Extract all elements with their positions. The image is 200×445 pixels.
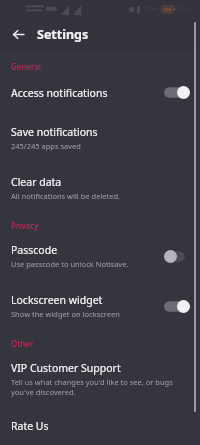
staticText: All notifications will be deleted.	[11, 191, 121, 201]
staticText: 245/245 apps saved	[11, 141, 81, 151]
staticText: Passcode	[11, 243, 58, 257]
button[interactable]: Rate Us	[0, 410, 200, 445]
staticText: Use passcode to unlock Notisave.	[11, 259, 129, 269]
staticText: Other	[11, 338, 34, 349]
staticText: 01:19	[178, 5, 194, 13]
button[interactable]: Back	[7, 23, 30, 46]
staticText: Access notifications	[11, 86, 108, 100]
button[interactable]: Lockscreen widget	[0, 284, 200, 328]
staticText: General	[11, 61, 41, 72]
button[interactable]: Passcode	[162, 248, 192, 265]
button[interactable]: VIP Customer Support	[0, 352, 200, 406]
staticText: Show the widget on lockscreen	[11, 309, 120, 319]
staticText: VIP Customer Support	[11, 361, 121, 375]
button[interactable]: Access notifications	[0, 75, 200, 110]
staticText: Settings	[37, 26, 89, 43]
button[interactable]: Access notifications	[162, 84, 192, 101]
staticText: Save notifications	[11, 125, 98, 139]
staticText: Rate Us	[11, 419, 49, 433]
staticText: Lockscreen widget	[11, 293, 103, 307]
button[interactable]: Lockscreen widget	[162, 298, 192, 315]
staticText: 100%	[143, 5, 159, 13]
staticText: Tell us what changes you'd like to see, …	[11, 377, 192, 397]
staticText: Privacy	[11, 220, 39, 231]
button[interactable]: Clear data	[0, 166, 200, 210]
button[interactable]: Save notifications	[0, 116, 200, 160]
staticText: Clear data	[11, 175, 62, 189]
button[interactable]: Passcode	[0, 234, 200, 278]
